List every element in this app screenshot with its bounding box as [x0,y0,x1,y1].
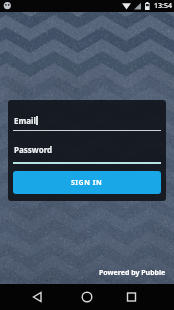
button[interactable]: Email [13,108,161,131]
staticText: 13:54 [154,1,172,11]
button[interactable] [116,284,174,310]
staticText: Email [14,115,36,126]
button[interactable] [0,284,58,310]
button[interactable]: SIGN IN [13,171,161,194]
staticText: Password [14,144,53,155]
staticText: SIGN IN [71,178,103,188]
button[interactable] [58,284,116,310]
button[interactable]: Password [13,138,161,164]
staticText: Powered by Pubble [99,268,166,278]
